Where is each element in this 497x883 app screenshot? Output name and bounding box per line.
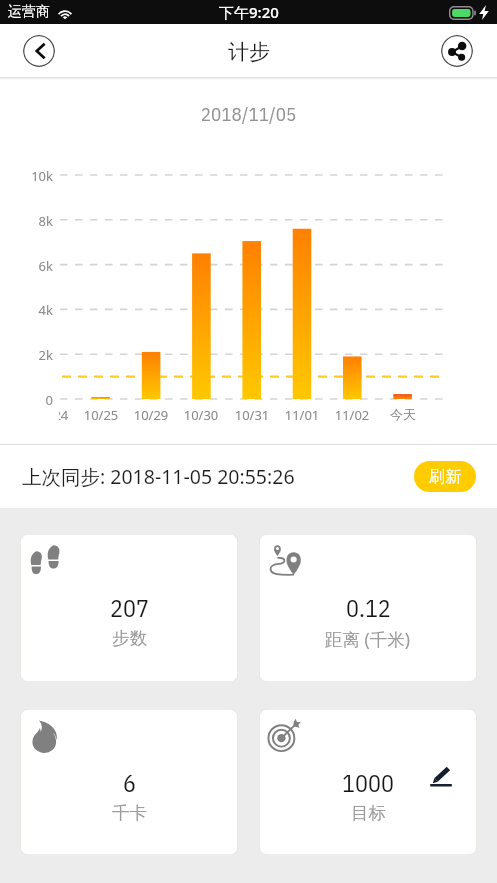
staticText: 10/24 — [59, 406, 81, 424]
staticText: 步数 — [112, 627, 147, 649]
staticText: 6 — [123, 767, 136, 798]
staticText: 10/30 — [171, 406, 231, 424]
button[interactable]: 207 — [20, 534, 238, 682]
staticText: 下午9:20 — [219, 2, 279, 22]
staticText: 207 — [110, 592, 149, 623]
staticText: 4k — [19, 301, 53, 319]
staticText: 运营商 — [8, 3, 50, 21]
button[interactable]: 刷新 — [414, 461, 476, 492]
staticText: 今天 — [373, 406, 433, 422]
staticText: 2018/11/05 — [0, 102, 497, 127]
staticText: 10/31 — [222, 406, 282, 424]
staticText: 10k — [19, 167, 53, 185]
button[interactable]: 1000 — [259, 709, 477, 855]
staticText: 刷新 — [429, 467, 461, 487]
button[interactable]: 6 — [20, 709, 238, 855]
staticText: 10/29 — [121, 406, 181, 424]
staticText: 11/01 — [272, 406, 332, 424]
button[interactable]: 0.12 — [259, 534, 477, 682]
staticText: 1000 — [342, 767, 394, 798]
button[interactable]: Share — [441, 35, 473, 67]
staticText: 目标 — [351, 802, 386, 824]
staticText: 8k — [19, 212, 53, 230]
staticText: 2k — [19, 346, 53, 364]
button[interactable]: Back — [23, 35, 55, 67]
staticText: 计步 — [228, 39, 270, 65]
button[interactable]: Edit goal — [429, 763, 453, 787]
staticText: 上次同步: 2018-11-05 20:55:26 — [22, 463, 295, 490]
staticText: 千卡 — [112, 802, 147, 824]
staticText: 0.12 — [346, 592, 391, 623]
staticText: 0 — [19, 391, 53, 409]
staticText: 6k — [19, 257, 53, 275]
staticText: 10/25 — [71, 406, 131, 424]
staticText: 距离 (千米) — [325, 627, 411, 651]
staticText: 11/02 — [322, 406, 382, 424]
